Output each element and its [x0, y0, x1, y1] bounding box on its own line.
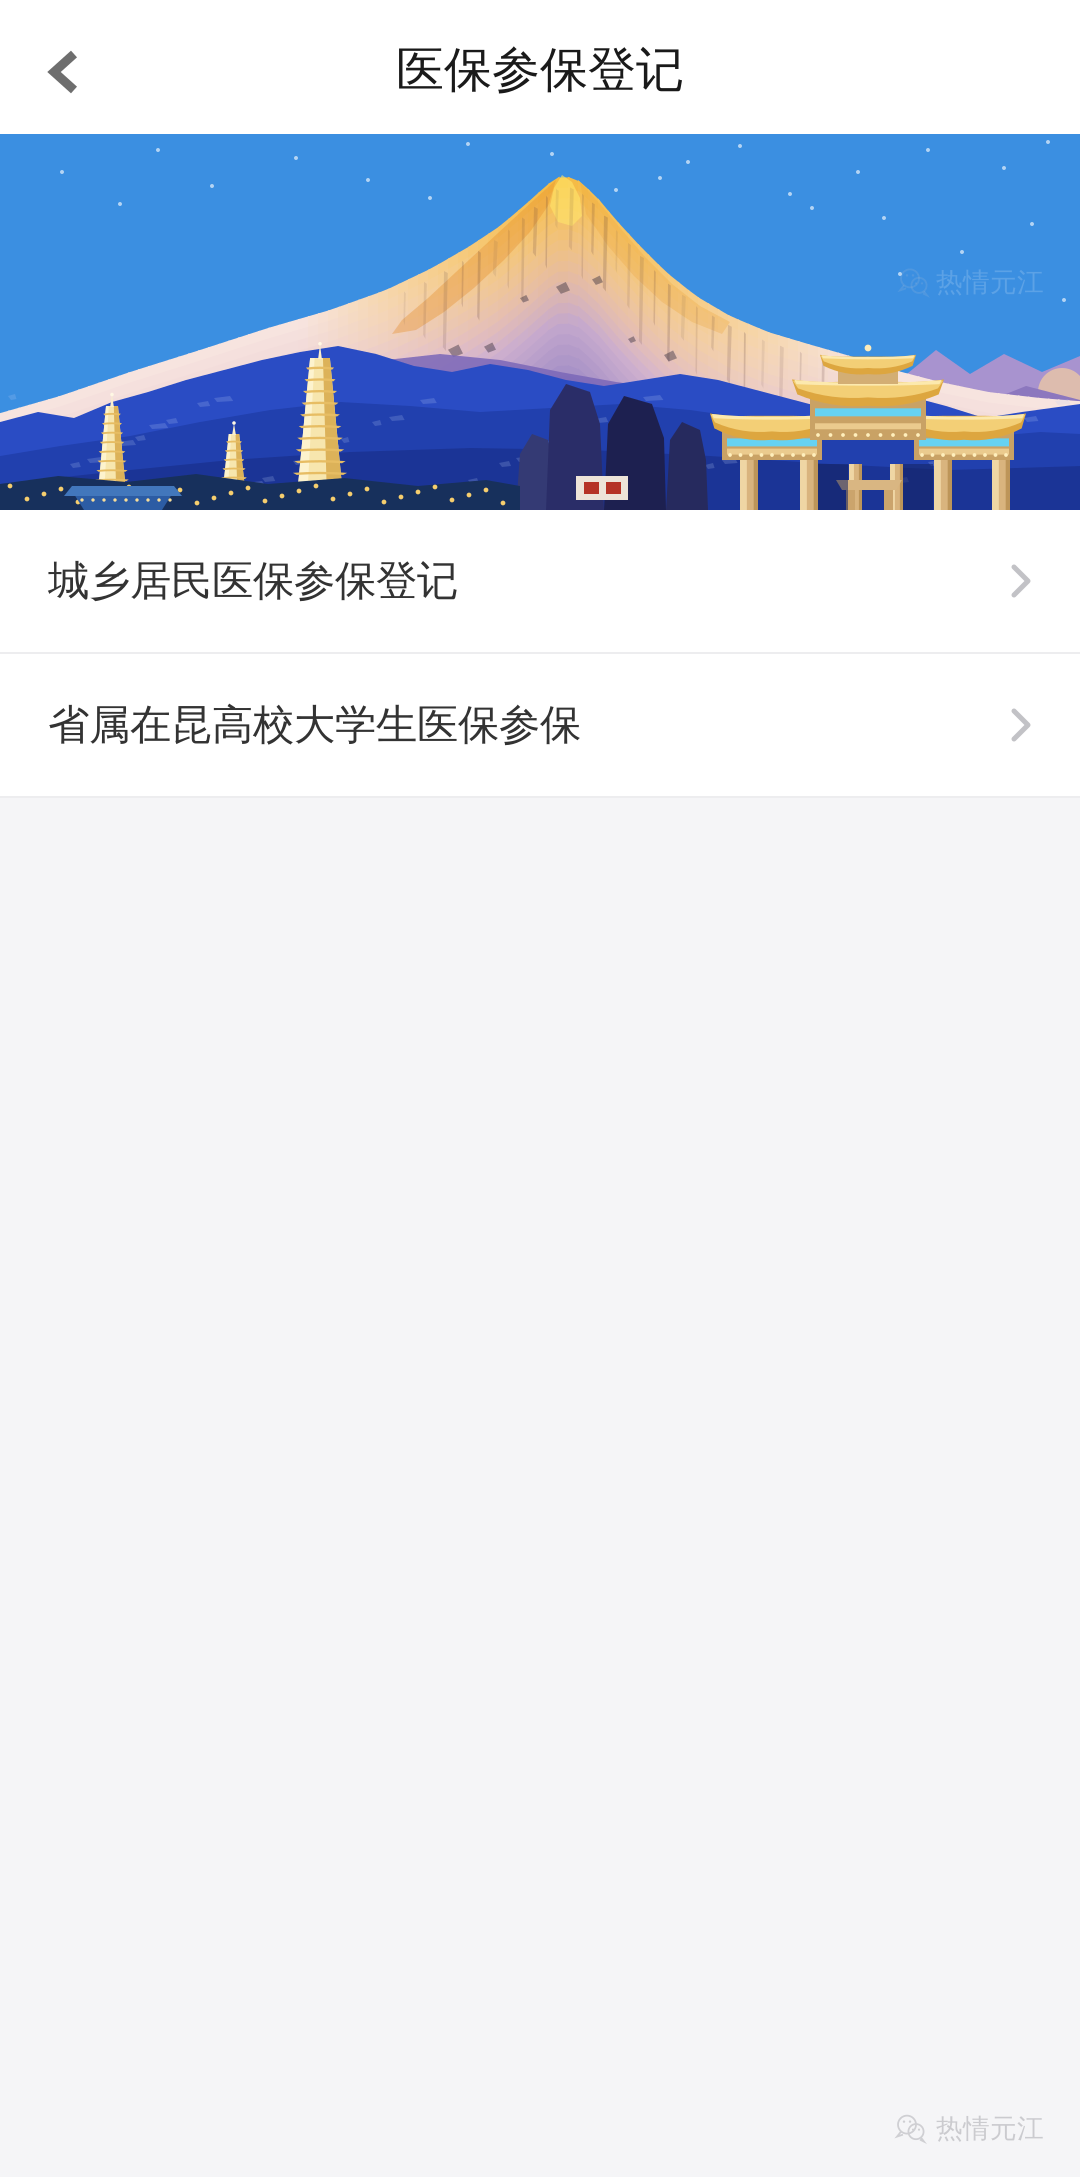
- button[interactable]: 省属在昆高校大学生医保参保: [0, 654, 1080, 796]
- staticText: 城乡居民医保参保登记: [48, 556, 458, 606]
- staticText: 热情元江: [936, 2112, 1044, 2145]
- staticText: 医保参保登记: [396, 40, 684, 99]
- button[interactable]: Back: [0, 0, 130, 134]
- staticText: 热情元江: [936, 266, 1044, 299]
- staticText: 省属在昆高校大学生医保参保: [48, 700, 581, 750]
- button[interactable]: 城乡居民医保参保登记: [0, 510, 1080, 652]
